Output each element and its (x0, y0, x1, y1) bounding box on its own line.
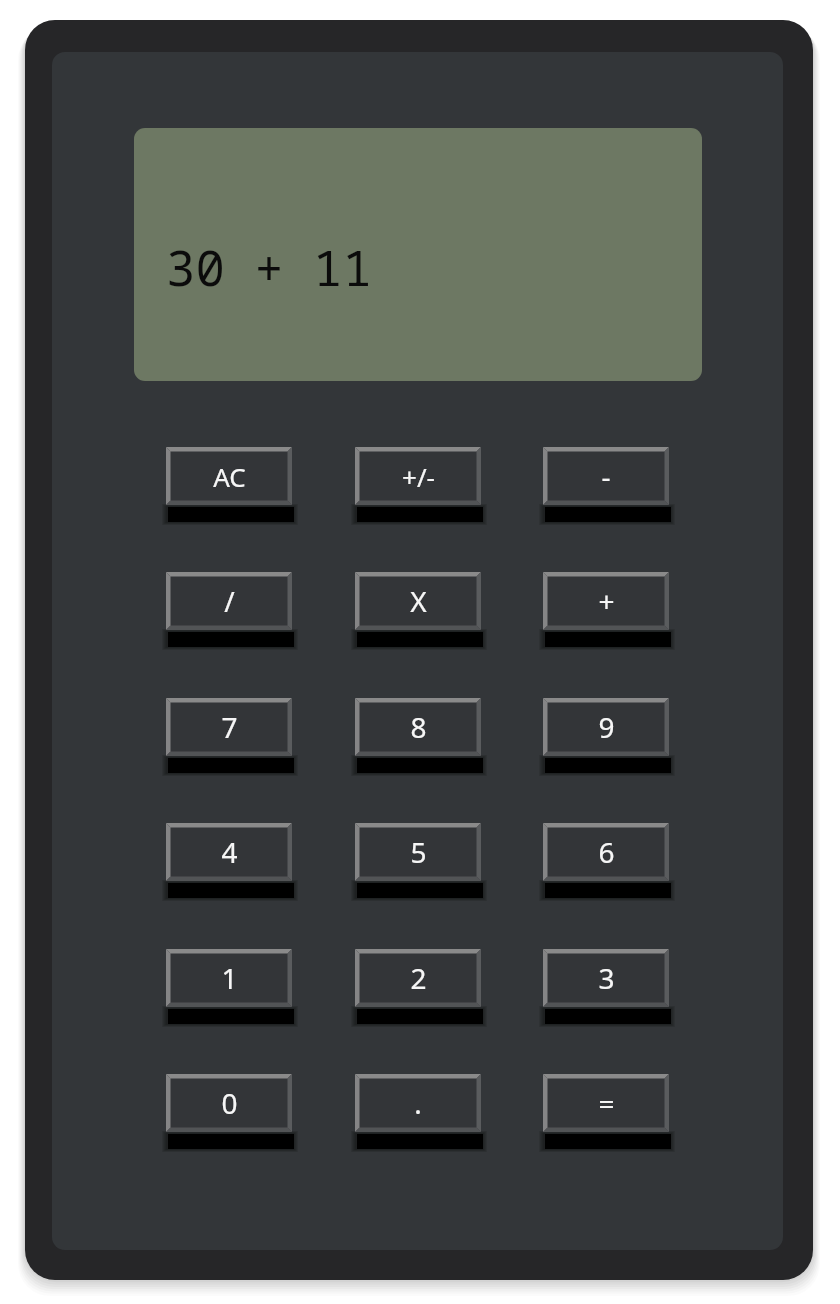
staticText: 30 + 11 (166, 234, 372, 301)
staticText: 6 (598, 833, 615, 871)
button[interactable]: Equals (541, 1074, 675, 1154)
button[interactable]: 0 (164, 1074, 298, 1154)
staticText: 9 (598, 708, 615, 746)
staticText: +/- (402, 459, 435, 494)
staticText: 0 (221, 1084, 238, 1122)
staticText: AC (213, 459, 246, 494)
button[interactable]: Toggle sign (353, 447, 487, 527)
staticText: . (414, 1084, 422, 1122)
staticText: X (410, 582, 427, 620)
staticText: + (598, 582, 615, 620)
button[interactable]: 4 (164, 823, 298, 903)
button[interactable]: Plus (541, 572, 675, 652)
button[interactable]: Minus (541, 447, 675, 527)
button[interactable]: 6 (541, 823, 675, 903)
staticText: 2 (410, 959, 427, 997)
button[interactable]: Multiply (353, 572, 487, 652)
button[interactable]: 8 (353, 698, 487, 778)
staticText: 5 (410, 833, 427, 871)
staticText: 8 (410, 708, 427, 746)
staticText: / (224, 582, 235, 620)
staticText: - (601, 457, 611, 495)
staticText: 1 (221, 959, 238, 997)
button[interactable]: 7 (164, 698, 298, 778)
button[interactable]: 3 (541, 949, 675, 1029)
button[interactable]: All clear (164, 447, 298, 527)
button[interactable]: 9 (541, 698, 675, 778)
button[interactable]: 1 (164, 949, 298, 1029)
button[interactable]: 5 (353, 823, 487, 903)
button[interactable]: 2 (353, 949, 487, 1029)
staticText: 7 (221, 708, 238, 746)
button[interactable]: Decimal point (353, 1074, 487, 1154)
staticText: 3 (598, 959, 615, 997)
button[interactable]: Divide (164, 572, 298, 652)
staticText: = (598, 1084, 615, 1122)
staticText: 4 (221, 833, 238, 871)
